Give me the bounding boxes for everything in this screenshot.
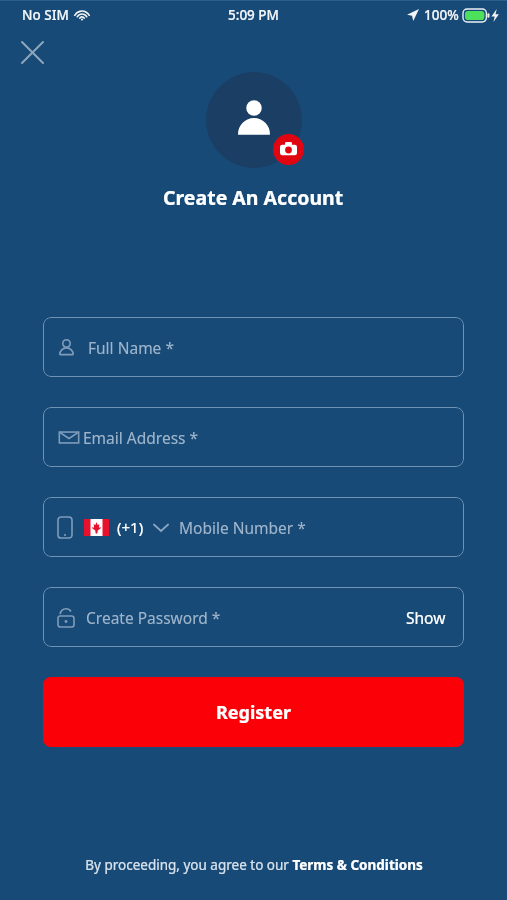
staticText: Create An Account — [163, 184, 344, 211]
staticText: (+1) — [117, 517, 144, 537]
staticText: Create Password * — [86, 607, 221, 628]
button[interactable]: Email Address * — [43, 407, 464, 467]
staticText: Full Name * — [88, 337, 174, 358]
button[interactable]: By proceeding, you agree to our Terms & … — [75, 852, 433, 878]
button[interactable]: Register — [43, 677, 464, 747]
staticText: 5:09 PM — [228, 6, 279, 24]
staticText: Show — [406, 607, 446, 628]
button[interactable]: Change profile photo — [206, 72, 302, 168]
staticText: Email Address * — [83, 427, 199, 448]
staticText: Register — [216, 700, 291, 725]
button[interactable]: Full Name * — [43, 317, 464, 377]
staticText: By proceeding, you agree to our Terms & … — [85, 856, 423, 874]
staticText: 100% — [424, 6, 459, 24]
button[interactable]: Close — [12, 32, 52, 72]
button[interactable]: Show — [404, 601, 448, 634]
staticText: No SIM — [22, 6, 69, 24]
button[interactable]: Create Password * — [43, 587, 464, 647]
button[interactable]: (+1) — [43, 497, 464, 557]
staticText: Mobile Number * — [179, 517, 306, 538]
